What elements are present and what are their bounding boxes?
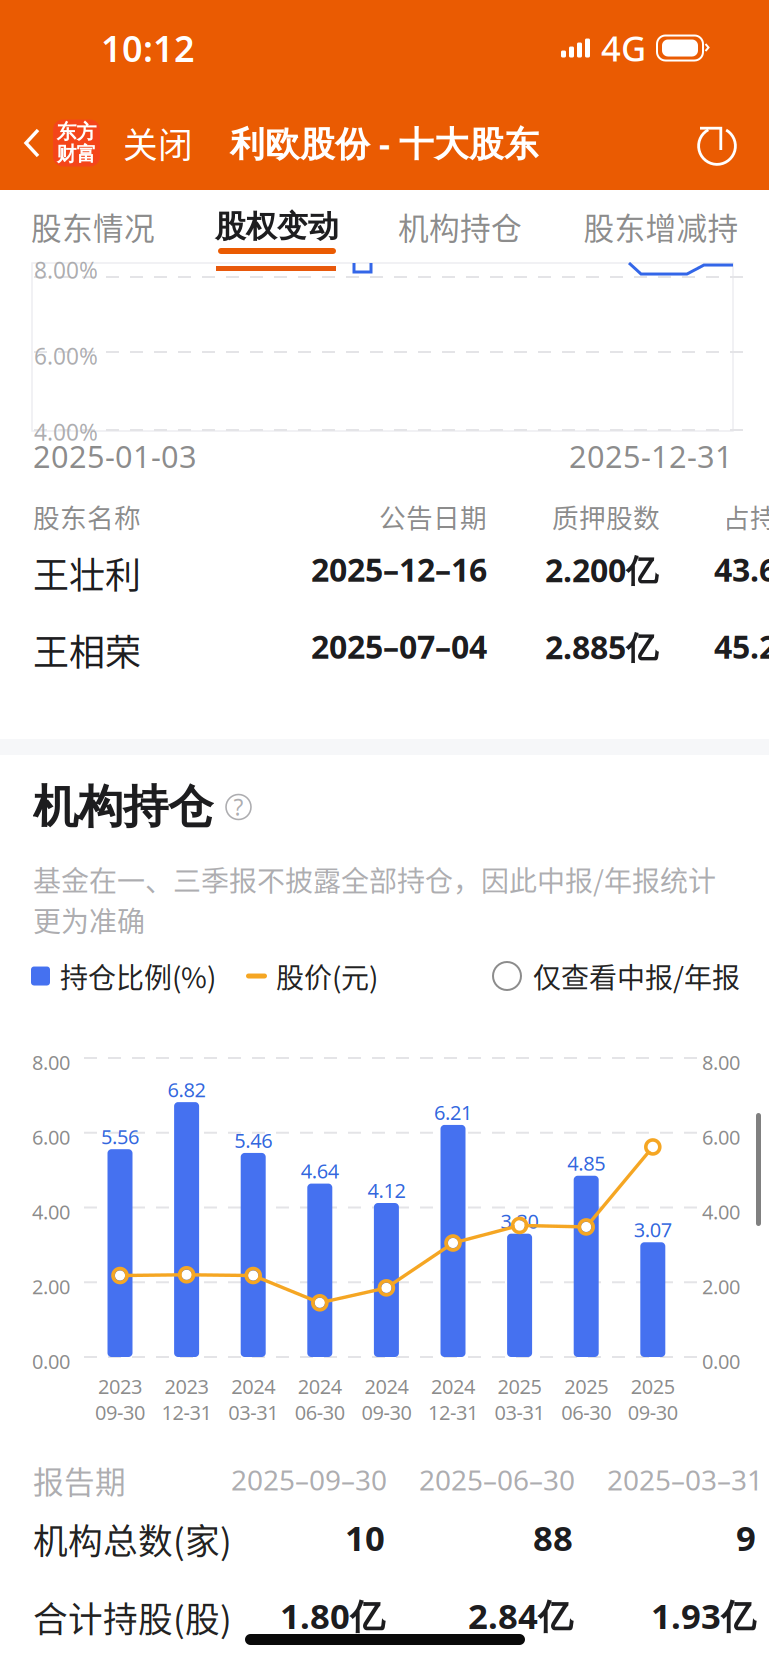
staticText: 2025–07–04	[311, 625, 487, 667]
staticText: 利欧股份 - 十大股东	[230, 119, 539, 167]
staticText: 10	[345, 1514, 385, 1561]
button[interactable]: 仅查看中报/年报	[493, 956, 740, 996]
staticText: 4.00%	[34, 417, 98, 447]
staticText: 2025-12-31	[569, 436, 733, 476]
staticText: 9	[736, 1514, 756, 1561]
staticText: 6.00	[32, 1124, 70, 1150]
staticText: 2.00	[32, 1273, 70, 1300]
staticText: 财富	[56, 141, 96, 167]
button[interactable]: 刷新	[695, 96, 769, 190]
staticText: 12-31	[428, 1399, 478, 1426]
staticText: 2.84亿	[468, 1592, 573, 1639]
staticText: 关闭	[123, 118, 193, 168]
staticText: 4.00	[32, 1198, 70, 1225]
staticText: 6.21	[434, 1099, 472, 1125]
staticText: 股东情况	[31, 204, 155, 249]
staticText: 2025	[564, 1373, 608, 1400]
staticText: 机构总数(家)	[33, 1514, 232, 1564]
staticText: 1.80亿	[280, 1592, 385, 1639]
staticText: 8.00%	[34, 255, 98, 285]
button[interactable]: 股价(元)	[216, 956, 378, 996]
staticText: 占持	[723, 497, 769, 536]
staticText: 3.30	[501, 1208, 539, 1234]
staticText: 2025	[631, 1373, 675, 1400]
staticText: 3.07	[634, 1216, 672, 1243]
staticText: 0.00	[32, 1348, 70, 1375]
staticText: 03-31	[228, 1399, 278, 1426]
button[interactable]: 机构持仓	[367, 190, 553, 263]
staticText: 2025–03–31	[607, 1461, 763, 1498]
staticText: 王壮利	[33, 547, 141, 599]
staticText: 4.12	[367, 1177, 405, 1204]
staticText: 股东增减持	[583, 204, 738, 249]
staticText: 王相荣	[33, 624, 141, 676]
button[interactable]: 股东情况	[0, 190, 186, 263]
staticText: 4.00	[702, 1198, 740, 1225]
staticText: 2.00	[702, 1273, 740, 1300]
staticText: 03-31	[495, 1399, 545, 1426]
staticText: 12-31	[162, 1399, 212, 1426]
staticText: 报告期	[33, 1458, 126, 1502]
staticText: 2024	[431, 1373, 475, 1400]
staticText: 6.00	[702, 1124, 740, 1150]
staticText: 公告日期	[379, 497, 487, 536]
button[interactable]: 关闭	[104, 96, 212, 190]
staticText: 2023	[98, 1373, 142, 1400]
staticText: 质押股数	[552, 497, 660, 536]
staticText: 4.64	[301, 1158, 339, 1184]
staticText: 1.93亿	[651, 1592, 756, 1639]
button[interactable]: 股东增减持	[558, 190, 764, 263]
staticText: 持仓比例(%)	[60, 956, 216, 996]
staticText: 东方	[56, 119, 96, 144]
staticText: 5.46	[234, 1127, 272, 1153]
staticText: 2025–06–30	[419, 1461, 575, 1498]
staticText: 06-30	[561, 1399, 611, 1426]
button[interactable]: 股权变动	[184, 190, 370, 263]
staticText: 股东名称	[33, 497, 141, 536]
staticText: 8.00	[32, 1049, 70, 1076]
staticText: ?	[233, 792, 243, 822]
staticText: 2025	[498, 1373, 542, 1400]
staticText: 5.56	[101, 1123, 139, 1150]
staticText: 合计持股(股)	[33, 1592, 232, 1642]
button[interactable]: 返回	[0, 96, 104, 190]
staticText: 2.885亿	[545, 625, 658, 669]
staticText: 2025–09–30	[231, 1461, 387, 1498]
staticText: 4G	[601, 25, 646, 71]
staticText: 6.00%	[34, 341, 98, 371]
staticText: 09-30	[628, 1399, 678, 1426]
staticText: 2023	[165, 1373, 209, 1400]
staticText: 2.200亿	[545, 548, 658, 592]
staticText: 06-30	[295, 1399, 345, 1426]
staticText: 45.2	[714, 625, 769, 667]
staticText: 88	[533, 1514, 573, 1561]
staticText: 43.6	[714, 548, 769, 590]
staticText: 0.00	[702, 1348, 740, 1375]
staticText: 4.85	[567, 1150, 605, 1176]
staticText: 股权变动	[215, 207, 339, 246]
staticText: 基金在一、三季报不披露全部持仓，因此中报/年报统计 更为准确	[33, 859, 716, 940]
staticText: 2024	[364, 1373, 408, 1400]
button[interactable]: 持仓比例(%)	[31, 956, 216, 996]
staticText: 2025–12–16	[311, 548, 487, 590]
staticText: 2025-01-03	[33, 436, 197, 476]
staticText: 10:12	[101, 24, 195, 72]
staticText: 股价(元)	[276, 956, 378, 996]
staticText: 8.00	[702, 1049, 740, 1076]
staticText: 机构持仓	[33, 778, 213, 835]
staticText: 2024	[231, 1373, 275, 1400]
staticText: 2024	[298, 1373, 342, 1400]
staticText: 仅查看中报/年报	[533, 956, 740, 996]
staticText: 6.82	[168, 1076, 206, 1103]
staticText: 09-30	[361, 1399, 411, 1426]
staticText: 机构持仓	[398, 204, 522, 249]
staticText: 09-30	[95, 1399, 145, 1426]
